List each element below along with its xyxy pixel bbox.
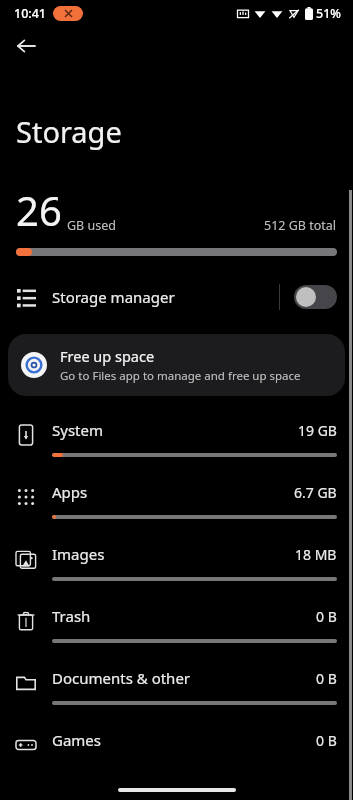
button[interactable]: Storage manager toggle [294, 285, 337, 309]
staticText: 19 GB [298, 421, 337, 440]
staticText: Games [52, 730, 102, 750]
staticText: 51% [316, 5, 341, 22]
button[interactable]: Trash [0, 598, 353, 660]
staticText: 0 B [316, 731, 337, 750]
button[interactable]: Storage manager [0, 274, 353, 320]
staticText: Documents & other [52, 668, 191, 688]
staticText: System [52, 420, 103, 440]
staticText: 10:41 [14, 5, 47, 22]
staticText: 26 [16, 183, 62, 237]
staticText: Go to Files app to manage and free up sp… [60, 368, 301, 384]
staticText: Free up space [60, 346, 155, 366]
staticText: Images [52, 544, 105, 564]
staticText: 512 GB total [264, 217, 337, 234]
staticText: Storage manager [52, 287, 175, 307]
staticText: 6.7 GB [294, 483, 337, 502]
button[interactable]: Back [6, 26, 46, 66]
staticText: 18 MB [295, 545, 337, 564]
staticText: GB used [67, 217, 116, 234]
staticText: Storage [16, 112, 122, 151]
staticText: Apps [52, 482, 88, 502]
button[interactable]: Images [0, 536, 353, 598]
staticText: Trash [52, 606, 91, 626]
button[interactable]: Documents & other [0, 660, 353, 722]
button[interactable]: System [0, 412, 353, 474]
button[interactable]: Games [0, 722, 353, 784]
button[interactable]: Free up space [8, 334, 345, 396]
staticText: 0 B [316, 669, 337, 688]
button[interactable]: Apps [0, 474, 353, 536]
staticText: 0 B [316, 607, 337, 626]
